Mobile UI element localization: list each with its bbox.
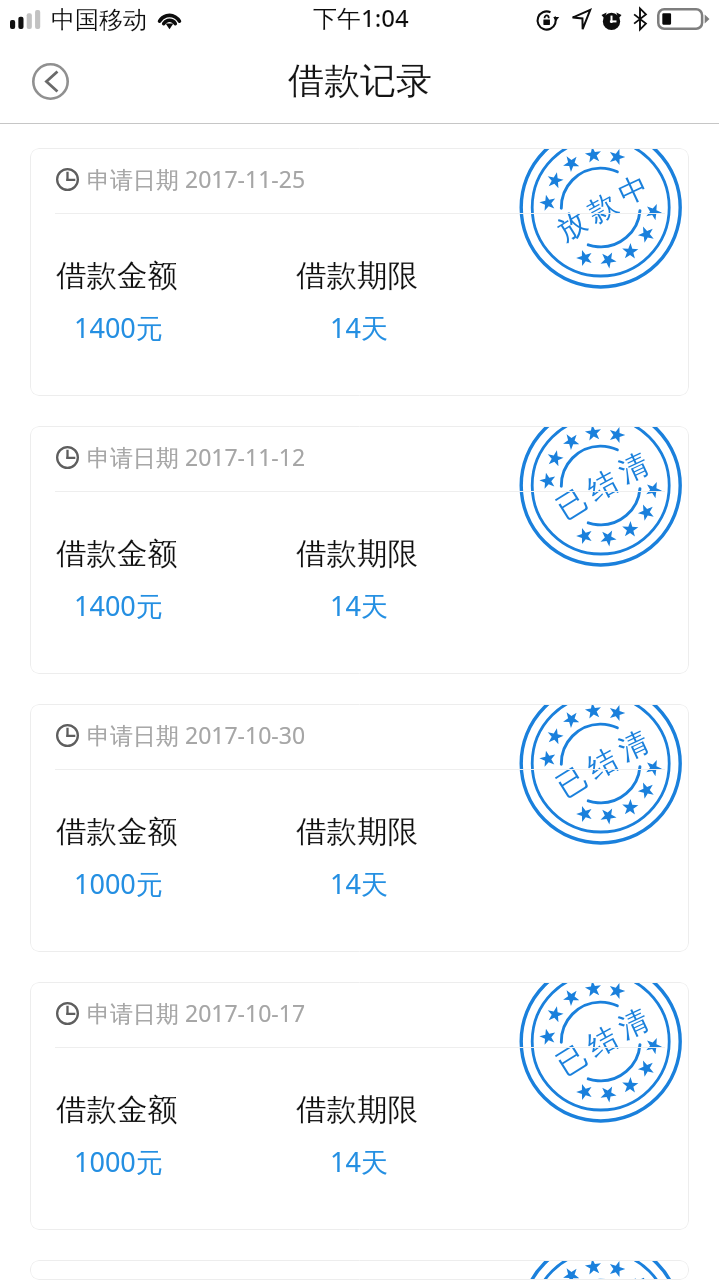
button[interactable]: 放	[30, 148, 689, 396]
staticText: 中	[613, 167, 655, 213]
staticText: 借款金额	[56, 257, 178, 295]
staticText: 借款金额	[56, 1091, 178, 1129]
staticText: 申请日期 2017-10-30	[87, 719, 306, 750]
staticText: 已	[550, 1037, 594, 1083]
button[interactable]: 已	[30, 704, 689, 952]
staticText: 申请日期 2017-11-25	[87, 163, 306, 194]
staticText: 结	[581, 1019, 624, 1065]
staticText: 借款期限	[296, 535, 418, 573]
staticText: 14天	[330, 1143, 388, 1180]
staticText: 申请日期 2017-10-01	[87, 1275, 306, 1280]
staticText: 1400元	[74, 587, 163, 624]
staticText: 借款期限	[296, 257, 418, 295]
button[interactable]: 已	[30, 982, 689, 1230]
button[interactable]: 已	[30, 426, 689, 674]
staticText: 清	[613, 445, 655, 491]
staticText: 款	[581, 185, 624, 231]
staticText: 借款期限	[296, 1091, 418, 1129]
staticText: 借款期限	[296, 813, 418, 851]
staticText: 放	[550, 203, 594, 249]
staticText: 1400元	[74, 309, 163, 346]
staticText: 申请日期 2017-10-17	[87, 997, 306, 1028]
staticText: 14天	[330, 865, 388, 902]
staticText: 申请日期 2017-11-12	[87, 441, 306, 472]
staticText: 结	[581, 463, 624, 509]
staticText: 下午1:04	[313, 1, 409, 34]
staticText: 中国移动	[51, 5, 147, 35]
staticText: 借款金额	[56, 535, 178, 573]
button[interactable]: 已	[30, 1260, 689, 1280]
staticText: 1000元	[74, 1143, 163, 1180]
button[interactable]: Back	[16, 47, 84, 115]
staticText: 清	[613, 723, 655, 769]
staticText: 借款记录	[288, 58, 432, 103]
staticText: 结	[581, 741, 624, 787]
staticText: 已	[550, 481, 594, 527]
staticText: 已	[550, 759, 594, 805]
staticText: 借款金额	[56, 813, 178, 851]
staticText: 清	[616, 1271, 651, 1280]
staticText: 14天	[330, 587, 388, 624]
staticText: 1000元	[74, 865, 163, 902]
staticText: 14天	[330, 309, 388, 346]
staticText: 清	[613, 1001, 655, 1047]
